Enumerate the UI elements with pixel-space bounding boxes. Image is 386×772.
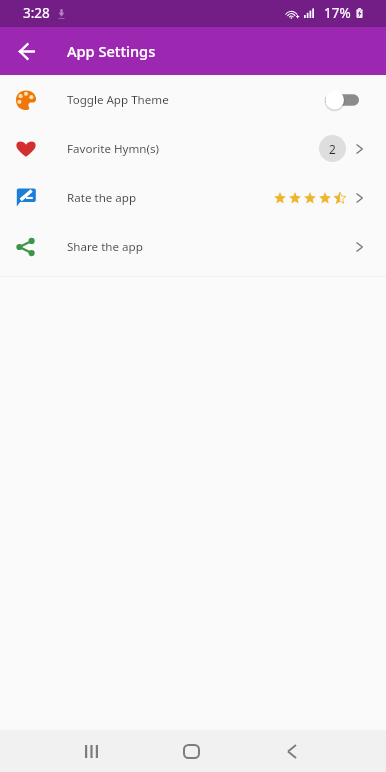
staticText: 17% bbox=[324, 4, 351, 22]
staticText: Favorite Hymn(s) bbox=[67, 141, 159, 157]
button[interactable]: Recent apps bbox=[67, 730, 115, 772]
button[interactable]: Back bbox=[10, 34, 44, 68]
button[interactable]: Favorite Hymn(s) bbox=[0, 124, 386, 173]
button[interactable]: Home bbox=[167, 730, 215, 772]
button[interactable]: Rate the app bbox=[0, 173, 386, 222]
staticText: Toggle App Theme bbox=[67, 92, 169, 108]
staticText: 3:28 bbox=[23, 4, 50, 22]
staticText: Share the app bbox=[67, 239, 143, 255]
button[interactable]: Toggle App Theme bbox=[0, 75, 386, 124]
staticText: 2 bbox=[329, 141, 336, 157]
button[interactable]: Back bbox=[268, 730, 316, 772]
staticText: Rate the app bbox=[67, 190, 137, 206]
button[interactable]: Toggle App Theme bbox=[325, 89, 359, 111]
staticText: App Settings bbox=[67, 41, 156, 61]
button[interactable]: Share the app bbox=[0, 222, 386, 271]
